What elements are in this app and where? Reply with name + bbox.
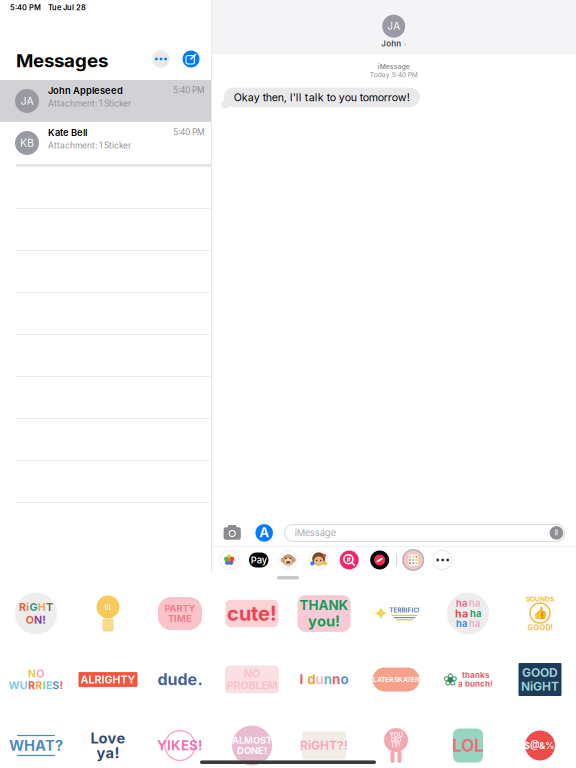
button[interactable]: More apps <box>433 550 452 569</box>
staticText: JA <box>20 95 33 107</box>
button[interactable]: SOUNDS <box>504 581 576 645</box>
button[interactable]: NO <box>216 647 288 711</box>
button[interactable]: Camera <box>223 523 242 542</box>
staticText: GOOD! <box>527 623 552 632</box>
staticText: LOL <box>452 735 484 756</box>
button[interactable]: KB <box>0 122 211 164</box>
button[interactable]: LATER <box>360 647 432 711</box>
button[interactable]: ✦ <box>360 581 432 645</box>
staticText: 👍 <box>532 606 547 620</box>
staticText: John <box>381 39 401 48</box>
button[interactable]: ALMOST <box>216 713 288 768</box>
staticText: Love <box>90 729 125 747</box>
staticText: ⦀ <box>554 529 558 537</box>
staticText: › <box>403 39 406 48</box>
button[interactable]: Memoji <box>309 550 328 569</box>
staticText: Attachment: 1 Sticker <box>48 140 131 150</box>
staticText: LATER <box>373 675 393 684</box>
staticText: Okay then, I'll talk to you tomorrow! <box>234 91 410 104</box>
staticText: Today 5:40 PM <box>370 71 418 79</box>
staticText: ha <box>456 598 467 609</box>
staticText: Tue Jul 28 <box>48 3 86 12</box>
button[interactable]: ALRIGHTY <box>72 647 144 711</box>
staticText: W <box>8 679 19 692</box>
staticText: IT! <box>392 742 400 749</box>
staticText: O <box>36 667 44 680</box>
button[interactable]: Stickers <box>402 549 424 571</box>
staticText: N <box>28 667 36 680</box>
staticText: S <box>52 679 59 692</box>
button[interactable]: PARTY <box>144 581 216 645</box>
button[interactable]: YOU <box>360 713 432 768</box>
staticText: R <box>35 679 42 692</box>
button[interactable]: App Store <box>255 523 274 542</box>
button[interactable]: ha <box>432 581 504 645</box>
staticText: iMessage <box>295 527 336 539</box>
staticText: PARTY <box>164 603 195 614</box>
staticText: THANK <box>299 597 348 613</box>
staticText: TERRIFIC! <box>389 607 419 614</box>
staticText: ❀ <box>443 669 458 690</box>
button[interactable]: New Message <box>180 48 202 70</box>
staticText: ! <box>42 613 46 626</box>
staticText: KB <box>20 137 34 149</box>
staticText: ALRIGHTY <box>80 673 135 686</box>
staticText: #$@&%*! <box>518 740 562 751</box>
button[interactable]: Music <box>370 550 389 569</box>
staticText: SKATER <box>394 675 419 684</box>
staticText: PROBLEM <box>226 679 277 692</box>
staticText: lit <box>104 602 111 612</box>
staticText: WHAT? <box>9 737 63 754</box>
button[interactable]: Love <box>72 713 144 768</box>
staticText: N <box>34 613 42 626</box>
staticText: G <box>29 601 37 613</box>
staticText: JA <box>387 20 400 32</box>
button[interactable]: cute! <box>216 581 288 645</box>
button[interactable]: ❀ <box>432 647 504 711</box>
staticText: 5:40 PM <box>173 127 205 137</box>
staticText: I <box>43 679 46 692</box>
staticText: H <box>38 601 46 613</box>
button[interactable]: dude. <box>144 647 216 711</box>
staticText: ha <box>470 608 481 619</box>
button[interactable]: lit <box>72 581 144 645</box>
button[interactable]: YIKES! <box>144 713 216 768</box>
staticText: a bunch! <box>458 679 493 689</box>
button[interactable]: THANK <box>288 581 360 645</box>
button[interactable]: I <box>288 647 360 711</box>
staticText: R <box>19 601 26 613</box>
button[interactable]: JA <box>0 80 211 122</box>
button[interactable]: WHAT? <box>0 713 72 768</box>
button[interactable]: Message field <box>285 524 565 541</box>
button[interactable]: RiGHT?! <box>288 713 360 768</box>
staticText: thanks <box>462 670 489 680</box>
staticText: I <box>300 671 304 687</box>
staticText: Attachment: 1 Sticker <box>48 98 131 108</box>
staticText: Pay <box>251 554 267 566</box>
button[interactable]: LOL <box>432 713 504 768</box>
button[interactable]: R <box>0 581 72 645</box>
staticText: 5:40 PM <box>10 3 41 12</box>
button[interactable]: #$@&%*! <box>504 713 576 768</box>
button[interactable]: Animoji <box>279 550 298 569</box>
staticText: NiGHT <box>521 679 559 693</box>
staticText: YIKES! <box>157 737 203 753</box>
button[interactable]: GOOD <box>504 647 576 711</box>
staticText: YOU <box>389 731 402 738</box>
staticText: U <box>20 679 28 692</box>
button[interactable]: Apple Pay <box>249 550 268 569</box>
button[interactable]: Photos <box>220 550 239 569</box>
staticText: ! <box>59 679 63 692</box>
button[interactable]: N <box>0 647 72 711</box>
button[interactable]: #images <box>340 550 359 569</box>
staticText: cute! <box>227 601 277 626</box>
staticText: iMessage <box>378 63 410 71</box>
staticText: R <box>28 679 35 692</box>
staticText: ya! <box>96 744 119 762</box>
button[interactable]: JA <box>212 0 576 53</box>
staticText: ha <box>469 618 480 629</box>
staticText: ha <box>455 607 468 620</box>
staticText: RiGHT?! <box>300 738 348 753</box>
button[interactable]: More <box>150 48 172 70</box>
